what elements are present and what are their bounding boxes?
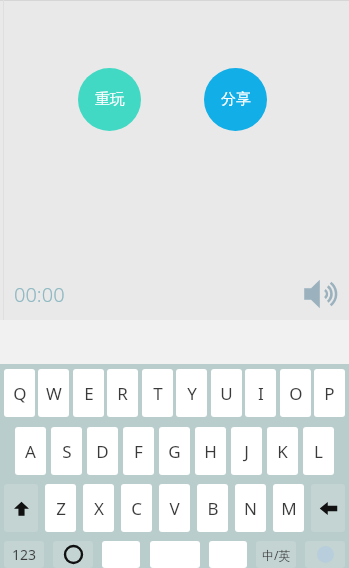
button[interactable]: I [245, 369, 276, 417]
staticText: R [117, 382, 128, 405]
staticText: 重玩 [95, 90, 125, 109]
staticText: 00:00 [14, 281, 65, 308]
button[interactable]: R [107, 369, 138, 417]
button[interactable]: P [314, 369, 345, 417]
button[interactable] [102, 541, 140, 568]
button[interactable]: Volume [301, 277, 341, 311]
staticText: F [134, 440, 143, 463]
button[interactable]: T [142, 369, 173, 417]
button[interactable]: Language [256, 541, 296, 568]
staticText: X [94, 497, 104, 520]
button[interactable] [209, 541, 247, 568]
button[interactable]: S [51, 427, 82, 475]
button[interactable]: O [280, 369, 311, 417]
button[interactable]: V [159, 484, 190, 532]
button[interactable]: D [87, 427, 118, 475]
button[interactable]: 分享 [204, 68, 267, 131]
staticText: Q [13, 382, 27, 405]
staticText: P [324, 382, 335, 405]
button[interactable]: Shift [4, 484, 38, 532]
staticText: B [207, 497, 219, 520]
staticText: U [220, 382, 233, 405]
button[interactable]: H [195, 427, 226, 475]
staticText: I [258, 382, 264, 405]
staticText: 中/英 [262, 547, 291, 563]
staticText: W [46, 382, 62, 405]
button[interactable]: Numbers [4, 541, 44, 568]
button[interactable]: X [83, 484, 114, 532]
button[interactable]: Y [176, 369, 207, 417]
staticText: H [204, 440, 217, 463]
staticText: L [314, 440, 323, 463]
staticText: D [96, 440, 109, 463]
button[interactable]: J [231, 427, 262, 475]
staticText: S [62, 440, 72, 463]
button[interactable]: Emoji [53, 541, 93, 568]
staticText: O [289, 382, 303, 405]
staticText: Y [187, 382, 197, 405]
button[interactable] [150, 541, 200, 568]
staticText: N [244, 497, 257, 520]
button[interactable]: Q [4, 369, 35, 417]
button[interactable]: B [197, 484, 228, 532]
button[interactable]: Backspace [311, 484, 345, 532]
staticText: Z [56, 497, 66, 520]
button[interactable]: W [38, 369, 69, 417]
button[interactable]: K [267, 427, 298, 475]
staticText: J [244, 440, 249, 463]
staticText: M [281, 497, 297, 520]
staticText: V [169, 497, 180, 520]
button[interactable]: G [159, 427, 190, 475]
staticText: 分享 [221, 90, 251, 109]
button[interactable]: Enter [305, 541, 345, 568]
button[interactable]: F [123, 427, 154, 475]
button[interactable]: N [235, 484, 266, 532]
button[interactable]: E [73, 369, 104, 417]
button[interactable]: C [121, 484, 152, 532]
button[interactable]: A [15, 427, 46, 475]
staticText: C [131, 497, 142, 520]
staticText: 123 [12, 545, 37, 564]
staticText: E [84, 382, 94, 405]
button[interactable]: 重玩 [78, 68, 141, 131]
button[interactable]: Z [45, 484, 76, 532]
staticText: T [153, 382, 163, 405]
button[interactable]: U [211, 369, 242, 417]
staticText: A [25, 440, 36, 463]
staticText: G [168, 440, 181, 463]
button[interactable]: M [273, 484, 304, 532]
staticText: K [277, 440, 288, 463]
button[interactable]: L [303, 427, 334, 475]
